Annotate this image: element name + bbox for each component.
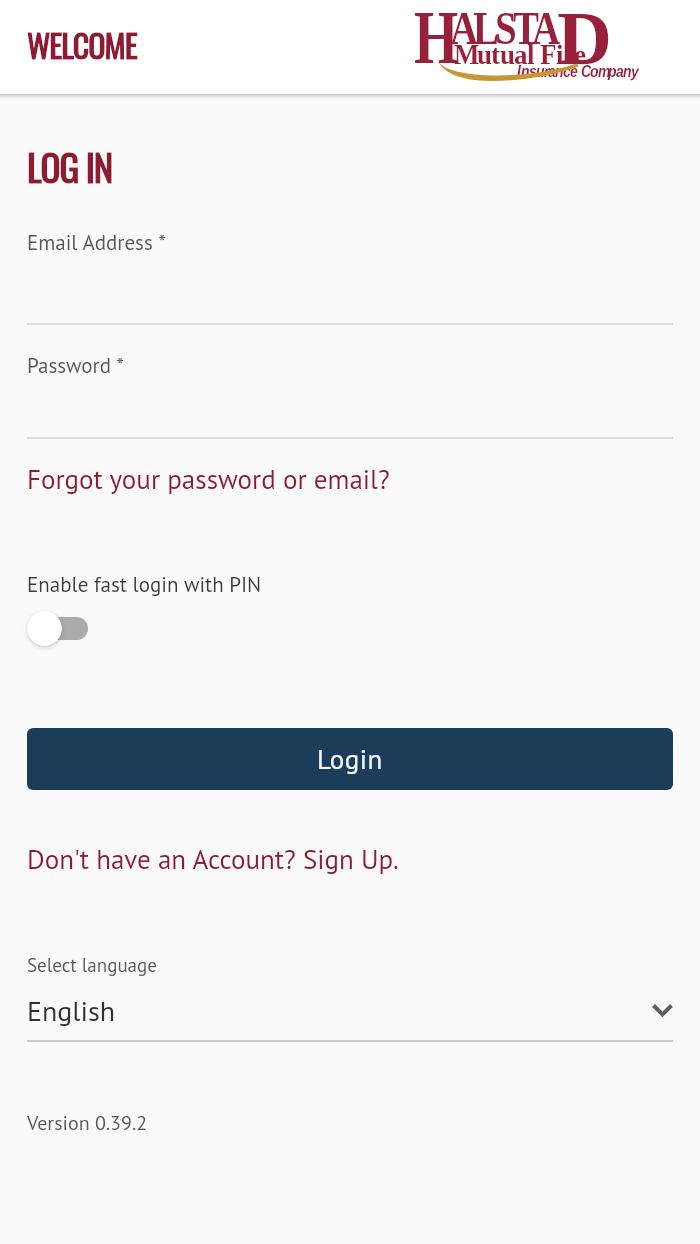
button[interactable]: English [27, 992, 673, 1028]
staticText: Select language [27, 953, 157, 978]
staticText: WELCOME [27, 21, 137, 68]
button[interactable]: Don't have an Account? Sign Up. [27, 842, 399, 877]
button[interactable] [27, 610, 88, 646]
staticText: English [27, 992, 116, 1028]
staticText: Login [317, 742, 383, 777]
staticText: Password * [27, 352, 124, 379]
button[interactable]: Forgot your password or email? [27, 462, 390, 497]
staticText: Enable fast login with PIN [27, 571, 262, 598]
button[interactable]: Login [27, 728, 673, 790]
staticText: Version 0.39.2 [27, 1110, 148, 1136]
staticText: LOG IN [27, 139, 113, 194]
staticText: Email Address * [27, 229, 166, 256]
